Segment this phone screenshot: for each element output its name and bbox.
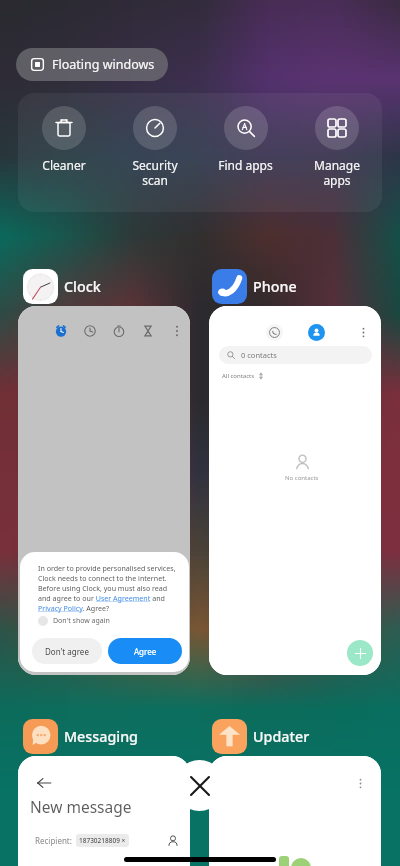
button[interactable]: Clock — [23, 268, 101, 304]
staticText: Security scan — [132, 157, 178, 188]
staticText: In order to provide personalised service… — [38, 563, 178, 613]
staticText: Updater — [253, 727, 310, 746]
staticText: Phone — [253, 277, 297, 296]
button[interactable]: Security scan — [109, 97, 200, 188]
button[interactable]: Don't agree — [32, 638, 102, 664]
staticText: Cleaner — [42, 157, 86, 173]
staticText: Clock — [64, 277, 101, 296]
button[interactable] — [266, 324, 283, 341]
staticText: 0 contacts — [241, 350, 277, 360]
button[interactable]: Find apps — [200, 97, 291, 173]
button[interactable] — [209, 756, 381, 866]
staticText: Messaging — [64, 727, 138, 746]
staticText: Manage apps — [314, 157, 360, 188]
button[interactable]: Updater — [212, 718, 310, 754]
staticText: Find apps — [218, 157, 273, 173]
staticText: Don't agree — [45, 646, 89, 657]
staticText: Don't show again — [53, 616, 110, 626]
button[interactable]: In order to provide personalised service… — [18, 306, 190, 675]
button[interactable] — [308, 324, 325, 341]
button[interactable]: Cleaner — [18, 97, 109, 173]
button[interactable]: Manage apps — [291, 97, 382, 188]
staticText: All contacts — [222, 372, 255, 380]
staticText: Agree — [134, 646, 157, 657]
staticText: Floating windows — [52, 56, 155, 73]
button[interactable]: All contacts — [222, 372, 264, 380]
button[interactable]: Phone — [212, 268, 297, 304]
button[interactable]: Add contact — [347, 640, 373, 666]
button[interactable]: Floating windows — [16, 48, 168, 81]
button[interactable]: More options — [358, 327, 369, 338]
button[interactable]: 0 contacts — [219, 346, 372, 364]
button[interactable]: Agree — [108, 638, 182, 664]
button[interactable]: More options — [209, 306, 381, 675]
staticText: Recipient: — [35, 835, 72, 846]
staticText: New message — [30, 796, 132, 817]
button[interactable]: Messaging — [23, 718, 138, 754]
staticText: No contacts — [285, 474, 319, 482]
button[interactable]: New message — [18, 756, 190, 866]
button[interactable]: Close — [174, 760, 225, 811]
staticText: 18730218809 × — [79, 836, 126, 845]
